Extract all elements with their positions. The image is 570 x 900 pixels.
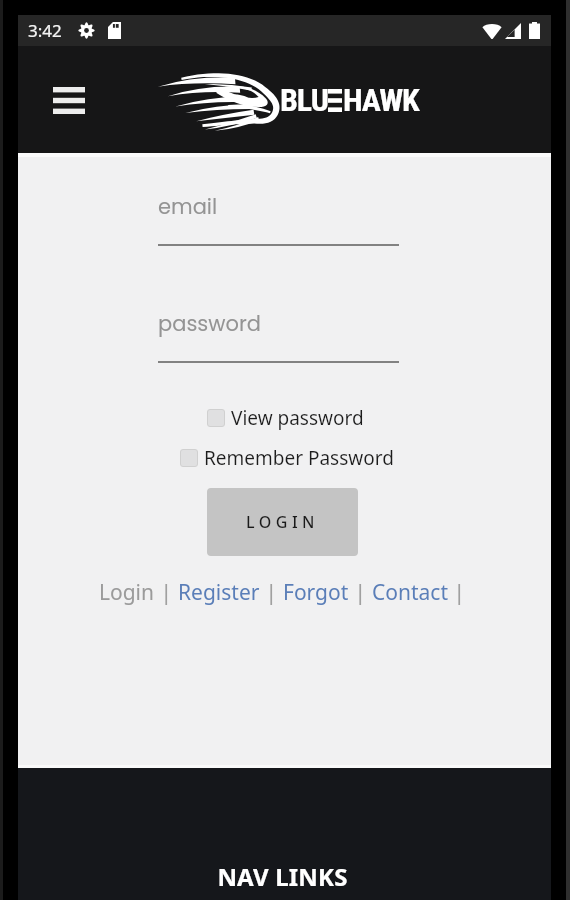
staticText: Contact [372, 578, 448, 607]
staticText: | [155, 578, 178, 607]
staticText: Login [99, 578, 155, 607]
staticText: BLU [280, 81, 328, 119]
staticText: Register [178, 578, 260, 607]
staticText: | [448, 578, 471, 607]
staticText: Forgot [283, 578, 349, 607]
staticText: 3:42 [28, 19, 62, 42]
staticText: NAV LINKS [16, 860, 549, 893]
staticText: | [349, 578, 372, 607]
button[interactable]: Contact [372, 578, 448, 607]
staticText: LOGIN [246, 511, 319, 533]
button[interactable]: Login [99, 578, 155, 607]
staticText: HAWK [343, 81, 419, 119]
button[interactable]: LOGIN [207, 488, 358, 556]
staticText: password [158, 309, 262, 338]
button[interactable]: Remember Password [180, 445, 394, 471]
button[interactable]: Forgot [283, 578, 349, 607]
button[interactable]: View password [207, 405, 364, 431]
staticText: email [158, 192, 218, 221]
button[interactable]: Open navigation menu [41, 75, 97, 125]
staticText: | [260, 578, 283, 607]
button[interactable]: Register [178, 578, 260, 607]
staticText: Remember Password [204, 445, 394, 471]
staticText: View password [231, 405, 364, 431]
